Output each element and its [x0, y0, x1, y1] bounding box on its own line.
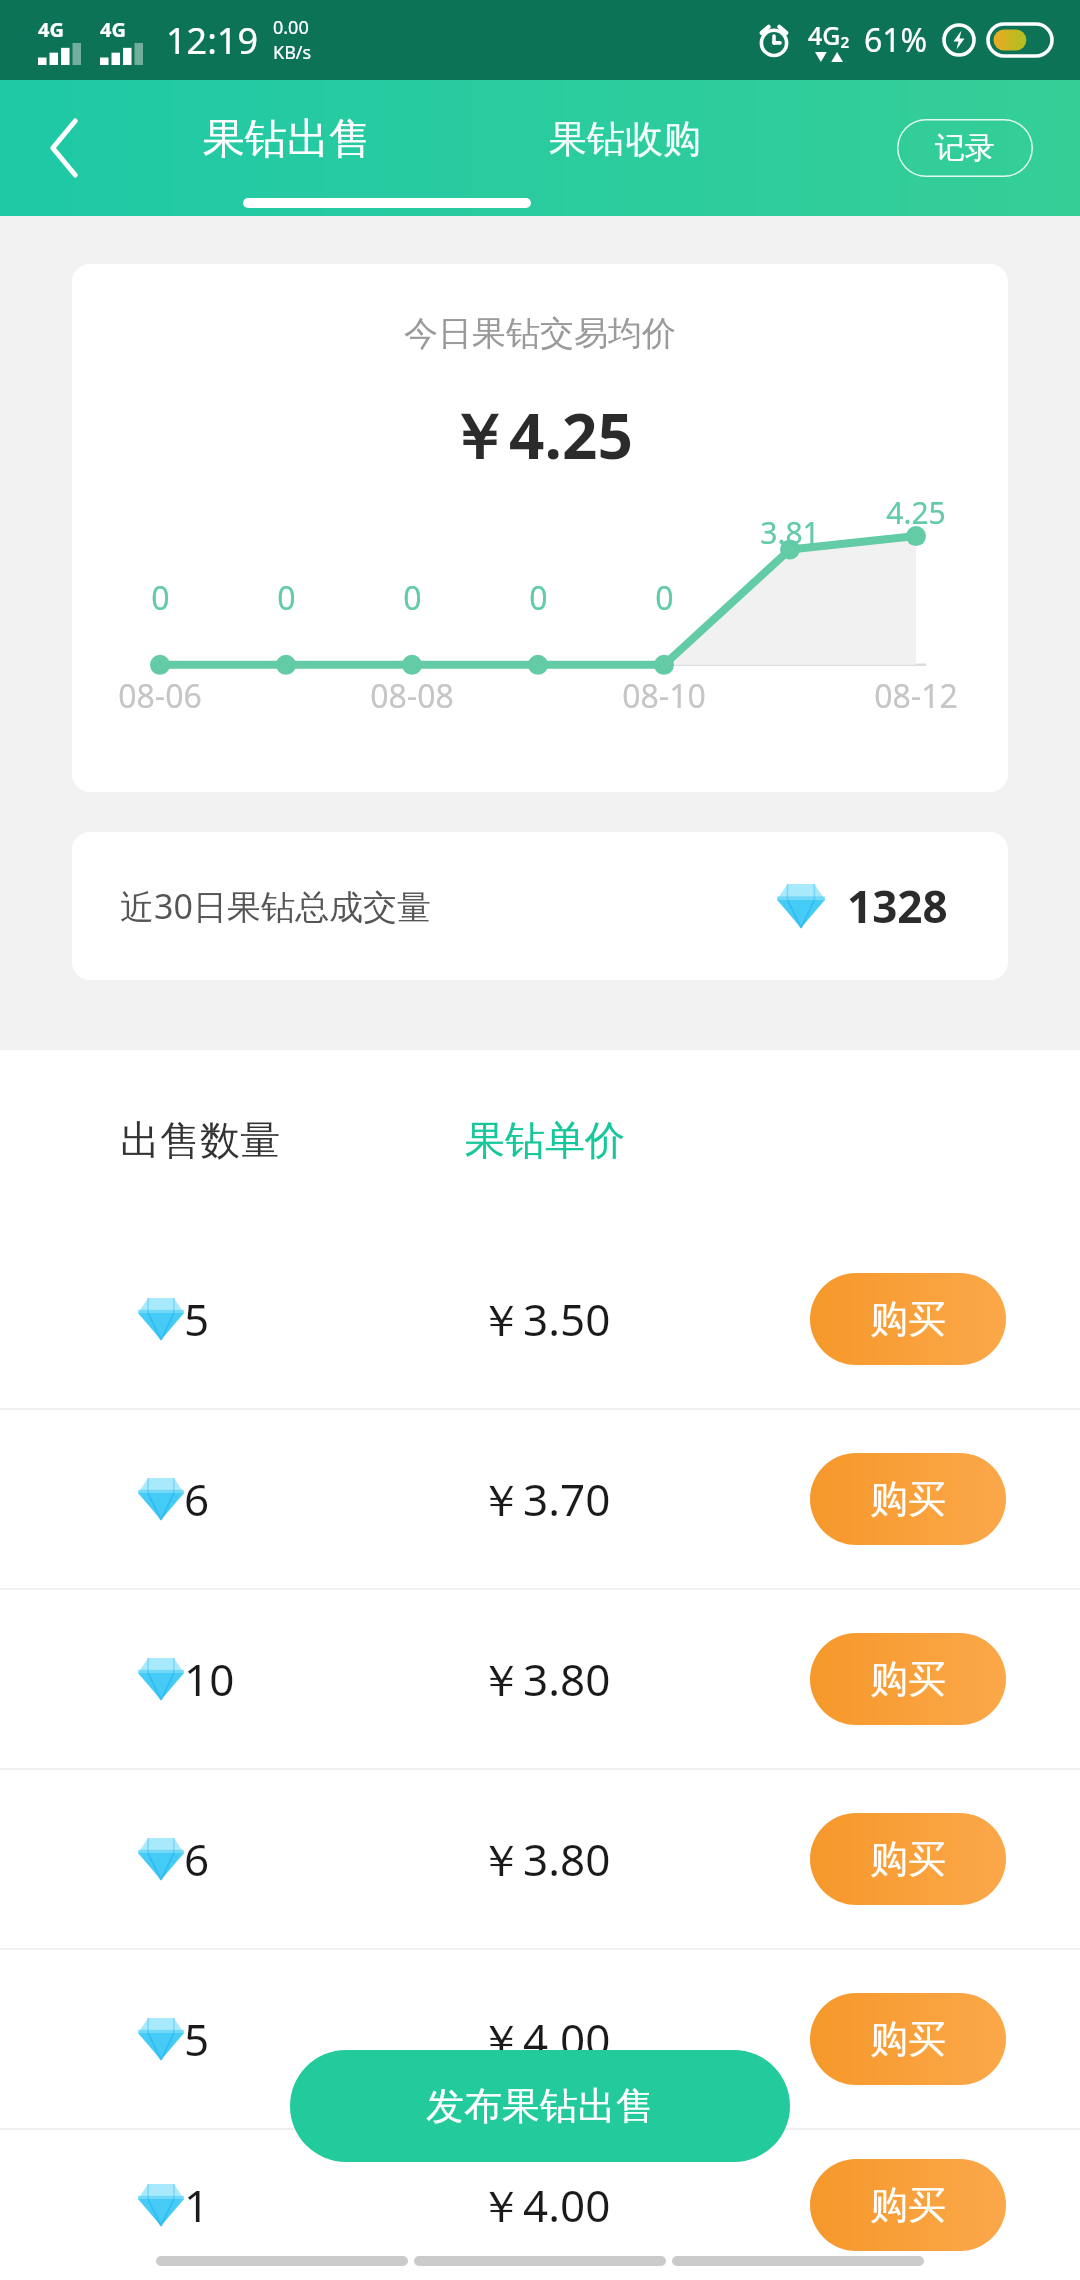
- button[interactable]: 6: [0, 1770, 1080, 1948]
- button[interactable]: 记录: [897, 119, 1033, 177]
- staticText: 5: [184, 2009, 210, 2069]
- staticText: ￥3.80: [479, 1829, 611, 1889]
- staticText: 购买: [870, 1475, 946, 1523]
- button[interactable]: 购买: [810, 1273, 1006, 1365]
- staticText: ￥3.80: [479, 1649, 611, 1709]
- staticText: 4.25: [886, 492, 946, 533]
- button[interactable]: 购买: [810, 1813, 1006, 1905]
- button[interactable]: 5: [0, 1230, 1080, 1408]
- staticText: 08-10: [622, 674, 706, 718]
- staticText: 果钻出售: [203, 113, 371, 166]
- staticText: 08-08: [370, 674, 454, 718]
- staticText: ￥3.50: [479, 1289, 611, 1349]
- staticText: 0: [529, 576, 548, 620]
- staticText: 果钻收购: [549, 115, 701, 163]
- button[interactable]: 5: [0, 1950, 1080, 2128]
- staticText: 购买: [870, 2181, 946, 2229]
- staticText: ￥4.00: [479, 2009, 611, 2069]
- button[interactable]: 1: [0, 2130, 1080, 2280]
- staticText: 1328: [847, 876, 948, 936]
- staticText: 61%: [864, 18, 928, 62]
- staticText: 12:19: [166, 16, 259, 65]
- staticText: 购买: [870, 1835, 946, 1883]
- staticText: 5: [184, 1289, 210, 1349]
- button[interactable]: 购买: [810, 2159, 1006, 2251]
- staticText: 4G₂: [808, 18, 850, 52]
- staticText: 今日果钻交易均价: [72, 312, 1008, 355]
- staticText: ￥4.25: [72, 393, 1008, 478]
- staticText: ￥4.00: [479, 2175, 611, 2235]
- staticText: 0: [403, 576, 422, 620]
- staticText: 0.00: [273, 15, 309, 40]
- staticText: 果钻单价: [465, 1115, 625, 1165]
- staticText: 6: [184, 1469, 210, 1529]
- button[interactable]: 果钻收购: [500, 80, 750, 198]
- button[interactable]: 果钻出售: [203, 80, 371, 198]
- staticText: 08-12: [874, 674, 958, 718]
- staticText: 4G: [100, 16, 126, 43]
- button[interactable]: 发布果钻出售: [290, 2050, 790, 2162]
- button[interactable]: 6: [0, 1410, 1080, 1588]
- staticText: 发布果钻出售: [426, 2082, 654, 2130]
- staticText: 购买: [870, 1295, 946, 1343]
- staticText: 记录: [935, 129, 995, 167]
- staticText: 1: [184, 2175, 210, 2235]
- button[interactable]: 购买: [810, 1453, 1006, 1545]
- staticText: ￥3.70: [479, 1469, 611, 1529]
- button[interactable]: 购买: [810, 1993, 1006, 2085]
- staticText: KB/s: [273, 40, 312, 65]
- staticText: 3.81: [760, 512, 820, 553]
- staticText: 0: [277, 576, 296, 620]
- staticText: 10: [184, 1649, 235, 1709]
- staticText: 购买: [870, 1655, 946, 1703]
- staticText: 4G: [38, 16, 64, 43]
- staticText: 0: [151, 576, 170, 620]
- staticText: 6: [184, 1829, 210, 1889]
- button[interactable]: Back: [0, 80, 130, 216]
- staticText: 08-06: [118, 674, 202, 718]
- staticText: 0: [655, 576, 674, 620]
- button[interactable]: 购买: [810, 1633, 1006, 1725]
- staticText: 近30日果钻总成交量: [120, 883, 431, 929]
- button[interactable]: 10: [0, 1590, 1080, 1768]
- button[interactable]: 近30日果钻总成交量: [72, 832, 1008, 980]
- staticText: 购买: [870, 2015, 946, 2063]
- staticText: 出售数量: [120, 1115, 280, 1165]
